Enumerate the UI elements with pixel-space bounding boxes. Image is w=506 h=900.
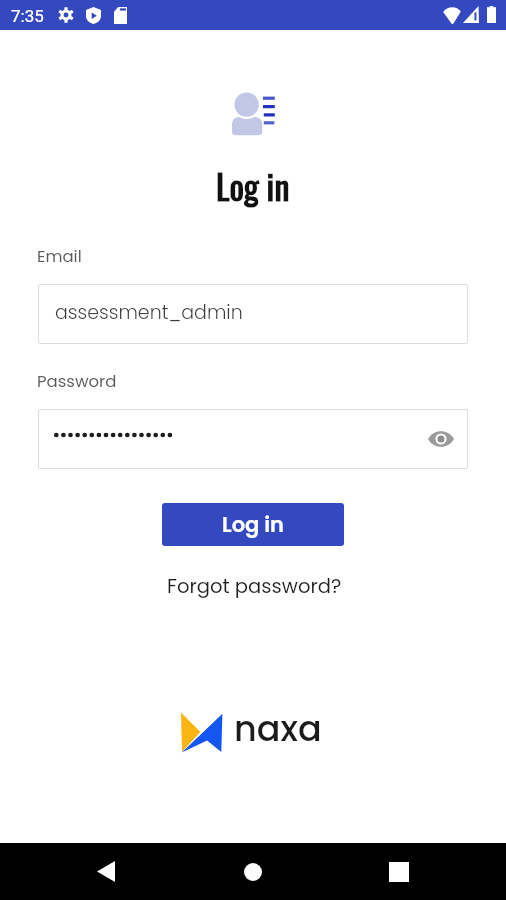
button[interactable]: Log in <box>162 503 344 546</box>
button[interactable]: Show password <box>418 416 464 462</box>
staticText: Password <box>37 370 117 393</box>
staticText: Log in <box>222 510 284 539</box>
button[interactable]: Home <box>223 843 283 900</box>
staticText: Email <box>37 245 82 268</box>
staticText: Log in <box>216 160 290 210</box>
button[interactable]: Back <box>76 843 136 900</box>
staticText: Forgot password? <box>167 572 342 599</box>
button[interactable]: Forgot password? <box>159 568 350 603</box>
staticText: assessment_admin <box>55 299 243 326</box>
staticText: naxa <box>234 704 322 753</box>
staticText: 7:35 <box>11 6 44 26</box>
button[interactable]: Recents <box>369 843 429 900</box>
button[interactable]: Show password <box>38 409 468 469</box>
button[interactable]: assessment_admin <box>38 284 468 344</box>
